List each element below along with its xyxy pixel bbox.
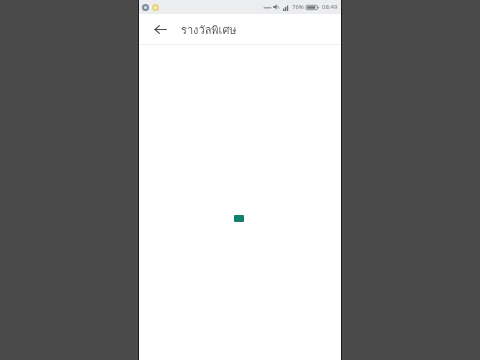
staticText: 08:49 — [322, 3, 338, 11]
button[interactable]: Back — [150, 19, 170, 39]
staticText: 76% — [292, 3, 304, 11]
staticText: รางวัลพิเศษ — [181, 21, 237, 38]
